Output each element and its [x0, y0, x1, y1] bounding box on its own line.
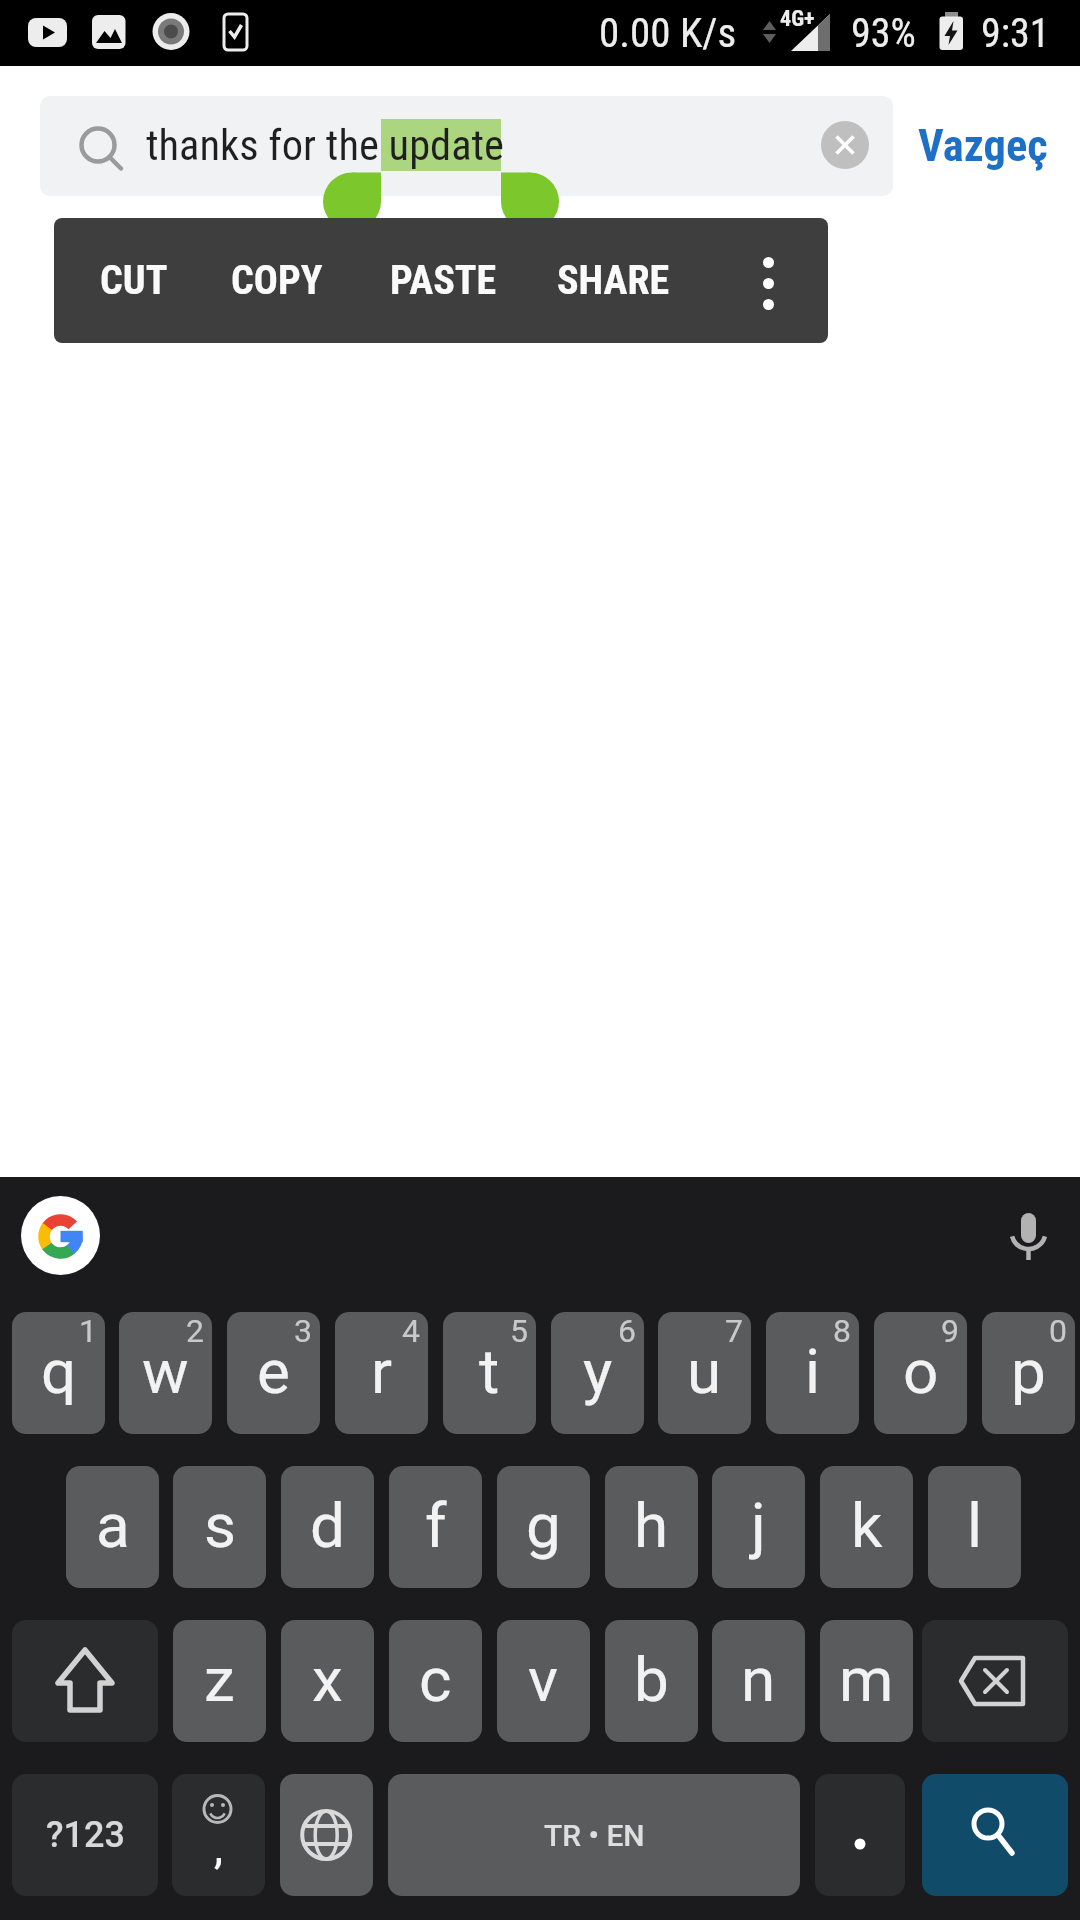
button[interactable] [922, 1774, 1068, 1896]
button[interactable]: a [66, 1466, 159, 1588]
staticText: COPY [231, 257, 323, 304]
button[interactable]: p [982, 1312, 1075, 1434]
staticText: n [741, 1643, 776, 1716]
staticText: d [310, 1489, 345, 1562]
button[interactable]: j [712, 1466, 805, 1588]
button[interactable]: l [928, 1466, 1021, 1588]
button[interactable]: y [551, 1312, 644, 1434]
staticText: c [419, 1643, 452, 1716]
staticText: 1 [79, 1312, 97, 1350]
button[interactable]: h [605, 1466, 698, 1588]
button[interactable]: e [227, 1312, 320, 1434]
button[interactable]: k [820, 1466, 913, 1588]
button[interactable]: ?123 [12, 1774, 158, 1896]
button[interactable]: z [173, 1620, 266, 1742]
staticText: v [528, 1643, 559, 1716]
button[interactable]: SHARE [557, 218, 670, 343]
button[interactable]: Vazgeç [918, 96, 1048, 196]
staticText: 6 [618, 1312, 636, 1350]
button[interactable]: q [12, 1312, 105, 1434]
button[interactable]: m [820, 1620, 913, 1742]
button[interactable] [12, 1620, 158, 1742]
staticText: 8 [833, 1312, 851, 1350]
staticText: t [479, 1335, 500, 1408]
staticText: 3 [294, 1312, 312, 1350]
button[interactable]: c [389, 1620, 482, 1742]
staticText: j [751, 1489, 766, 1562]
staticText: 7 [725, 1312, 743, 1350]
button[interactable]: s [173, 1466, 266, 1588]
staticText: m [839, 1643, 894, 1716]
button[interactable]: g [497, 1466, 590, 1588]
button[interactable]: d [281, 1466, 374, 1588]
button[interactable]: v [497, 1620, 590, 1742]
staticText: TR • EN [544, 1818, 645, 1853]
button[interactable]: r [335, 1312, 428, 1434]
button[interactable] [821, 121, 869, 169]
staticText: a [96, 1489, 130, 1562]
button[interactable]: w [119, 1312, 212, 1434]
staticText: thanks for the update [146, 121, 505, 171]
staticText: 9:31 [981, 10, 1050, 57]
staticText: e [257, 1335, 290, 1408]
button[interactable]: o [874, 1312, 967, 1434]
button[interactable] [280, 1774, 373, 1896]
staticText: k [851, 1489, 883, 1562]
button[interactable]: u [658, 1312, 751, 1434]
staticText: 4 [402, 1312, 420, 1350]
staticText: w [142, 1335, 189, 1408]
staticText: 93% [851, 10, 916, 57]
staticText: l [967, 1489, 983, 1562]
staticText: s [204, 1489, 236, 1562]
staticText: q [41, 1335, 77, 1408]
staticText: f [425, 1489, 447, 1562]
staticText: i [805, 1335, 821, 1408]
staticText: PASTE [390, 257, 497, 304]
staticText: x [312, 1643, 343, 1716]
staticText: p [1011, 1335, 1046, 1408]
staticText: b [634, 1643, 669, 1716]
staticText: 9 [941, 1312, 959, 1350]
staticText: 0.00 K/s [599, 9, 737, 57]
staticText: CUT [100, 257, 168, 304]
button[interactable]: x [281, 1620, 374, 1742]
button[interactable] [922, 1620, 1068, 1742]
button[interactable] [815, 1774, 905, 1896]
staticText: z [204, 1643, 235, 1716]
staticText: Vazgeç [918, 120, 1048, 172]
button[interactable]: COPY [231, 218, 323, 343]
button[interactable] [737, 218, 799, 343]
button[interactable]: n [712, 1620, 805, 1742]
staticText: g [526, 1489, 561, 1562]
button[interactable]: b [605, 1620, 698, 1742]
staticText: SHARE [557, 257, 670, 304]
button[interactable]: t [443, 1312, 536, 1434]
button[interactable]: PASTE [390, 218, 497, 343]
button[interactable]: i [766, 1312, 859, 1434]
staticText: 0 [1049, 1312, 1067, 1350]
button[interactable] [21, 1196, 100, 1275]
staticText: 5 [510, 1312, 528, 1350]
button[interactable]: f [389, 1466, 482, 1588]
button[interactable]: CUT [100, 218, 168, 343]
staticText: o [903, 1335, 939, 1408]
button[interactable]: thanks for the update [40, 96, 893, 196]
staticText: , [214, 1820, 224, 1874]
staticText: ?123 [46, 1814, 125, 1856]
staticText: u [687, 1335, 722, 1408]
staticText: 4G+ [780, 6, 815, 32]
staticText: h [634, 1489, 669, 1562]
staticText: y [583, 1335, 613, 1408]
staticText: 2 [186, 1312, 204, 1350]
staticText: r [371, 1335, 393, 1408]
button[interactable]: , [172, 1774, 265, 1896]
button[interactable]: TR • EN [388, 1774, 800, 1896]
